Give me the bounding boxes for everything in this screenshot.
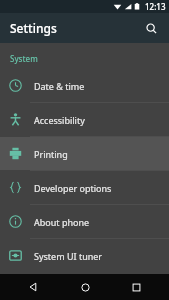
- staticText: Settings: [10, 20, 57, 36]
- button[interactable]: System UI tuner: [0, 239, 169, 272]
- button[interactable]: Accessibility: [0, 103, 169, 136]
- staticText: System UI tuner: [34, 250, 103, 262]
- button[interactable]: About phone: [0, 205, 169, 238]
- button[interactable]: Developer options: [0, 171, 169, 204]
- button[interactable]: Back: [15, 274, 51, 300]
- staticText: 12:13: [145, 1, 166, 12]
- button[interactable]: Home: [67, 274, 103, 300]
- button[interactable]: Printing: [0, 137, 169, 170]
- button[interactable]: Recent apps: [118, 274, 154, 300]
- staticText: Accessibility: [34, 114, 85, 126]
- staticText: Developer options: [34, 182, 112, 194]
- staticText: About phone: [34, 216, 90, 228]
- button[interactable]: Date & time: [0, 69, 169, 102]
- staticText: Date & time: [34, 80, 85, 92]
- button[interactable]: Search: [139, 16, 163, 40]
- staticText: Printing: [34, 148, 68, 160]
- staticText: System: [10, 53, 38, 64]
